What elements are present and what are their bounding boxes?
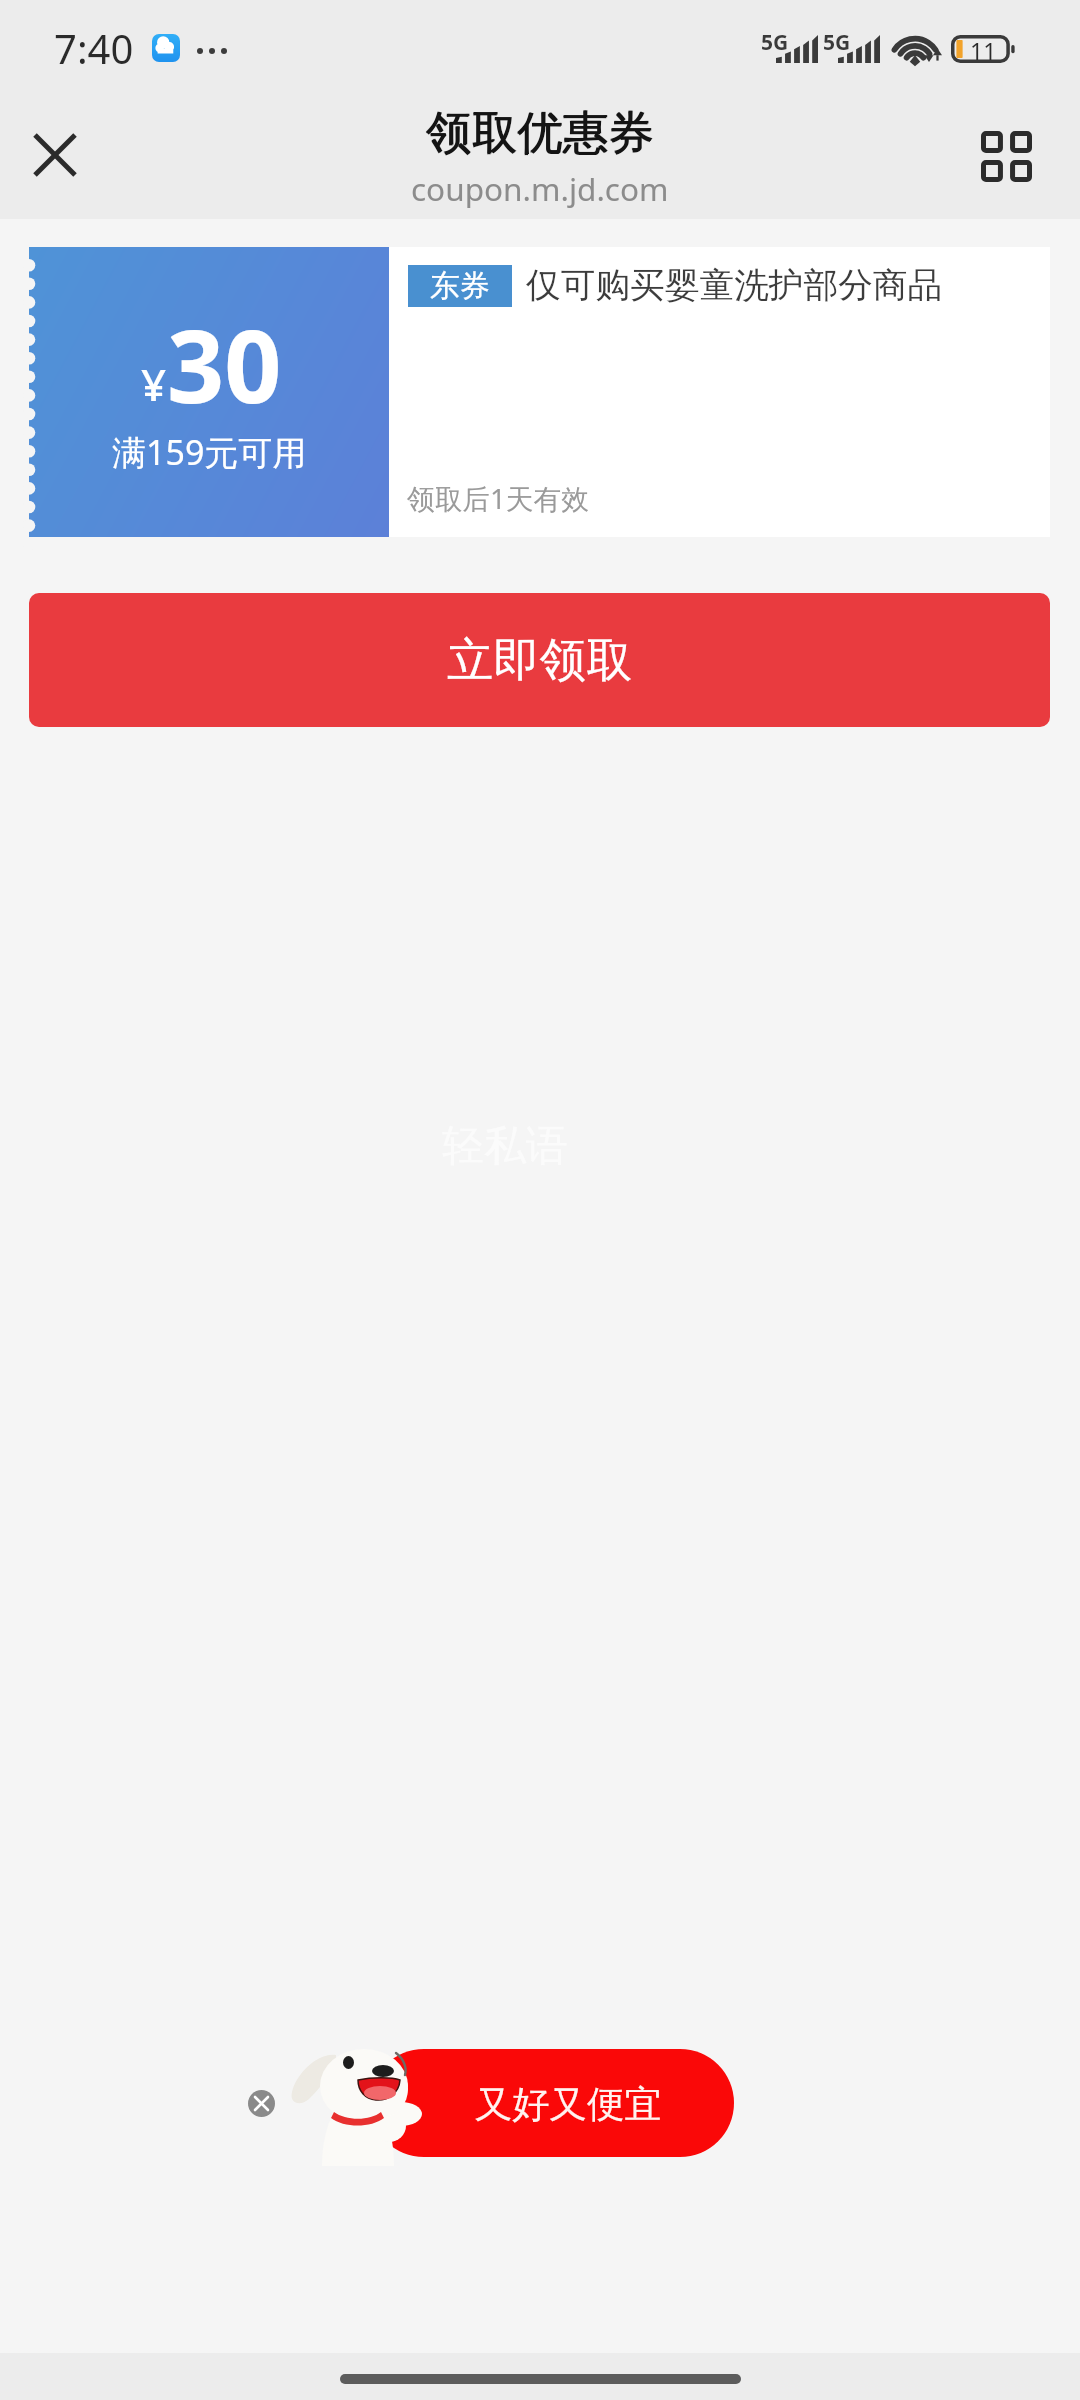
staticText: 7:40 — [54, 21, 134, 75]
staticText: 5G — [823, 28, 851, 57]
staticText: 领取优惠券 — [426, 105, 654, 162]
button[interactable]: Close ad — [248, 2090, 275, 2117]
button[interactable]: 又好又便宜 — [370, 2049, 734, 2157]
staticText: ¥ — [141, 354, 167, 414]
staticText: 11 — [970, 35, 997, 63]
staticText: 30 — [167, 296, 282, 432]
staticText: 立即领取 — [447, 631, 633, 689]
staticText: 领取优惠券 — [427, 104, 655, 161]
button[interactable]: Close — [16, 116, 94, 194]
button[interactable]: 立即领取 — [29, 593, 1050, 727]
staticText: 又好又便宜 — [475, 2081, 662, 2128]
staticText: 东券 — [430, 267, 490, 305]
staticText: 5G — [761, 28, 789, 57]
button[interactable]: ¥ — [29, 247, 1050, 537]
staticText: 仅可购买婴童洗护部分商品 — [526, 264, 943, 308]
staticText: 领取优惠券 — [426, 104, 654, 161]
staticText: 满159元可用 — [112, 429, 307, 475]
button[interactable]: Menu — [967, 117, 1045, 195]
staticText: 领取后1天有效 — [407, 479, 589, 517]
staticText: coupon.m.jd.com — [411, 167, 669, 210]
